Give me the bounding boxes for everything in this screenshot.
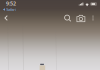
button[interactable]: Search (61, 12, 74, 24)
staticText: Safari (6, 7, 16, 12)
button[interactable]: Safari (0, 7, 100, 12)
button[interactable]: Back (0, 12, 8, 24)
staticText: 9:52 (6, 0, 16, 7)
button[interactable]: Camera (74, 12, 87, 24)
button[interactable]: More options (87, 12, 99, 24)
